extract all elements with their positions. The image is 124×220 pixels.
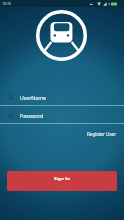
staticText: 18:30: [2, 1, 11, 6]
button[interactable]: UserName: [0, 89, 124, 105]
staticText: Register User: [87, 131, 117, 137]
button[interactable]: Sign In: [7, 171, 117, 191]
button[interactable]: Register User: [86, 129, 118, 139]
staticText: UserName: [20, 94, 46, 101]
staticText: Sign In: [54, 176, 71, 182]
button[interactable]: Password: [0, 107, 124, 123]
staticText: Password: [20, 112, 44, 119]
other: App logo: [36, 10, 87, 61]
